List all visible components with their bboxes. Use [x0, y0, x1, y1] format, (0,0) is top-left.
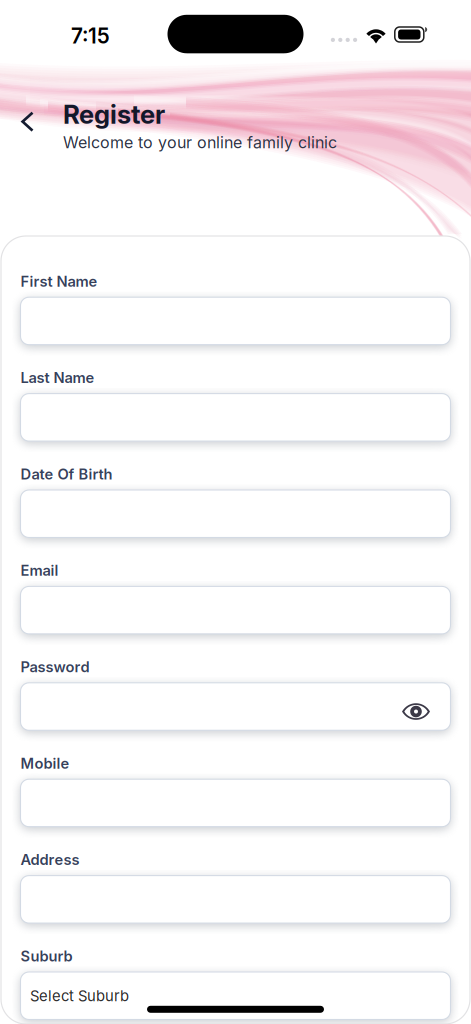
button[interactable]	[20, 586, 450, 634]
button[interactable]: Select Suburb	[20, 972, 450, 1019]
button[interactable]	[20, 779, 450, 827]
staticText: Email	[20, 562, 58, 579]
staticText: 7:15	[71, 23, 110, 48]
button[interactable]	[20, 297, 450, 345]
staticText: Suburb	[20, 947, 72, 965]
staticText: Last Name	[20, 369, 94, 387]
staticText: Select Suburb	[30, 987, 129, 1005]
staticText: Address	[20, 851, 79, 869]
staticText: Welcome to your online family clinic	[63, 133, 337, 152]
staticText: Date Of Birth	[20, 465, 112, 483]
staticText: Password	[20, 658, 89, 676]
button[interactable]	[20, 490, 450, 537]
button[interactable]	[20, 394, 450, 441]
staticText: First Name	[20, 272, 97, 290]
staticText: Mobile	[20, 754, 69, 772]
button[interactable]	[20, 683, 450, 730]
staticText: Register	[63, 99, 165, 130]
button[interactable]: Back	[0, 56, 46, 143]
button[interactable]	[20, 876, 450, 923]
